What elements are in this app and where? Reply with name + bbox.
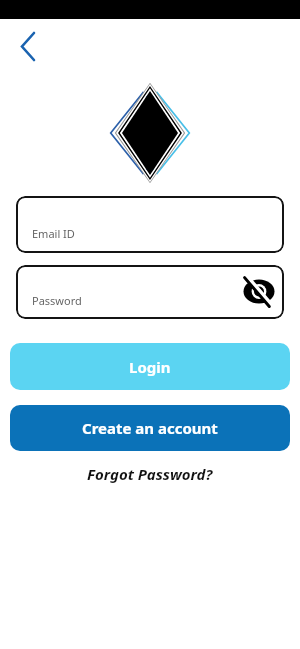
staticText: Password [32, 293, 82, 308]
button[interactable]: Password [16, 265, 284, 319]
button[interactable]: Create an account [10, 405, 290, 451]
button[interactable]: Forgot Password? [0, 464, 300, 484]
button[interactable]: Login [10, 343, 290, 390]
staticText: Email ID [32, 226, 75, 241]
staticText: Login [129, 357, 171, 377]
button[interactable]: Email ID [16, 196, 284, 253]
button[interactable] [12, 26, 48, 68]
staticText: Create an account [82, 418, 218, 438]
staticText: Forgot Password? [87, 464, 213, 484]
